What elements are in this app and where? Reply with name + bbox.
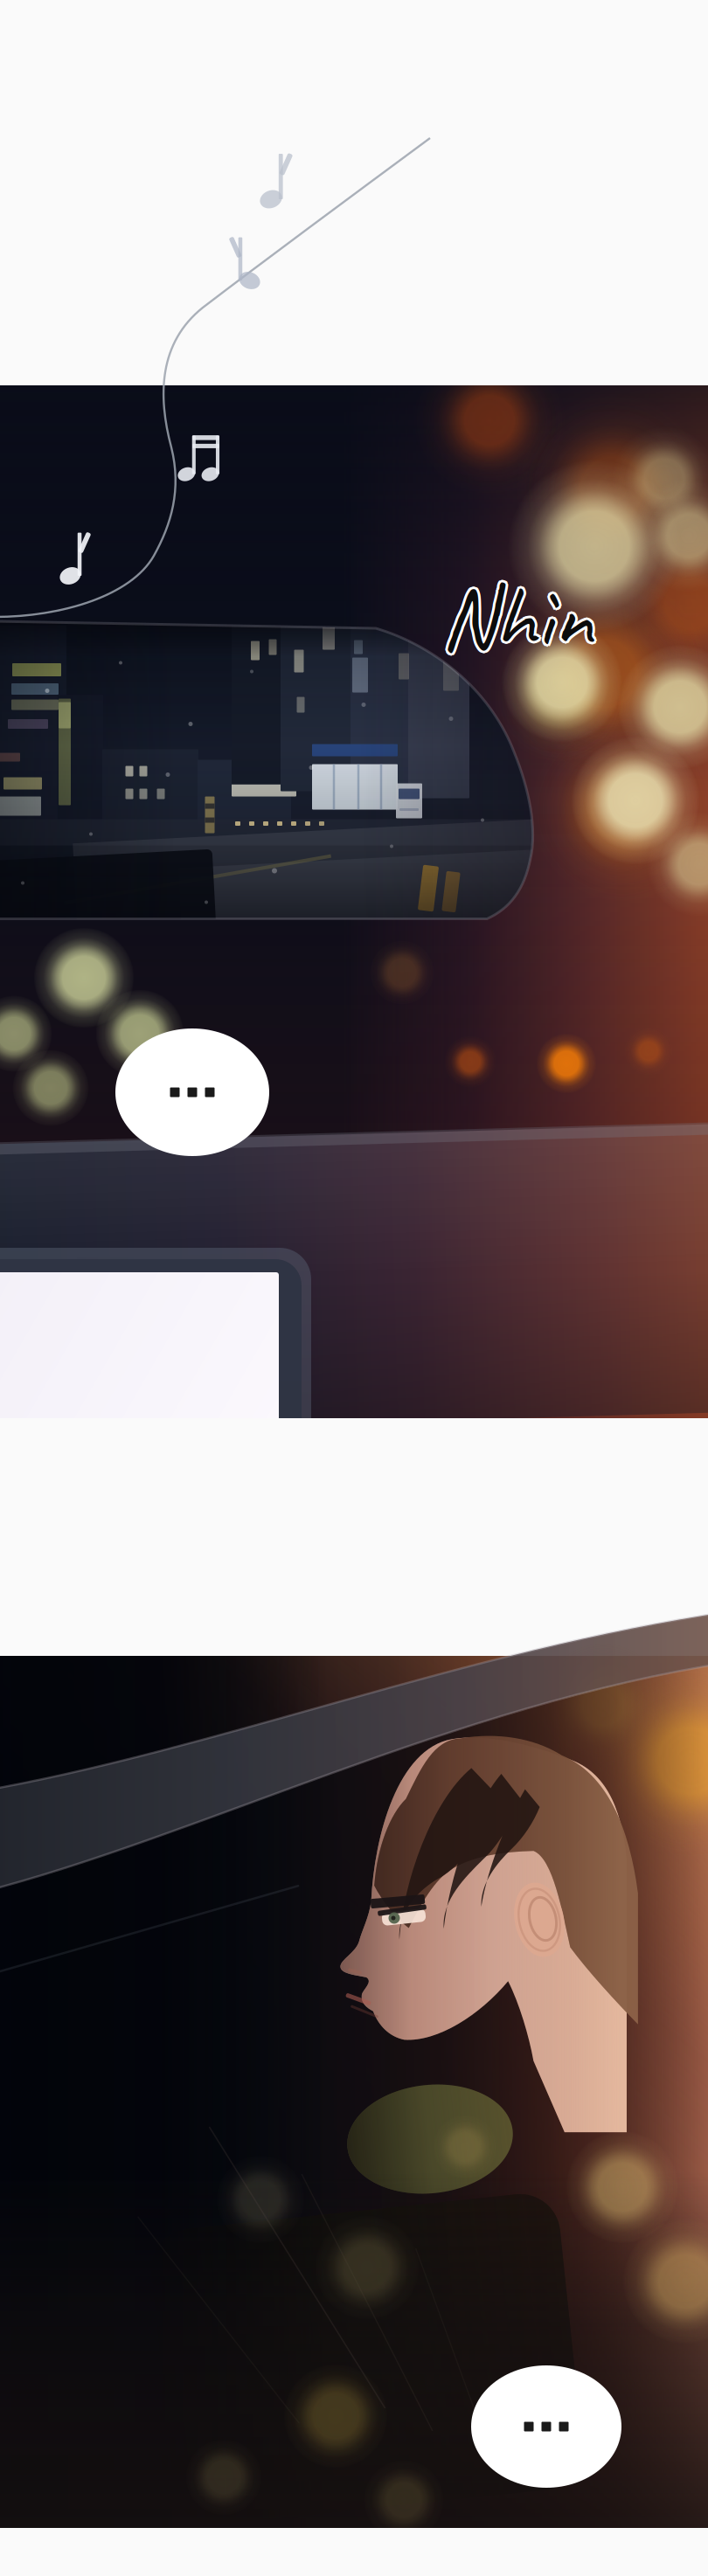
staticText: Nhìn [441,559,593,670]
staticText: Nhìn [439,559,591,671]
staticText: Nhìn [439,563,591,675]
staticText: Nhìn [441,561,593,673]
staticText: Nhìn [438,561,590,673]
staticText: Nhìn [442,559,595,671]
staticText: Nhìn [442,563,595,675]
staticText: Nhìn [441,564,593,675]
staticText: Nhìn [443,561,595,673]
